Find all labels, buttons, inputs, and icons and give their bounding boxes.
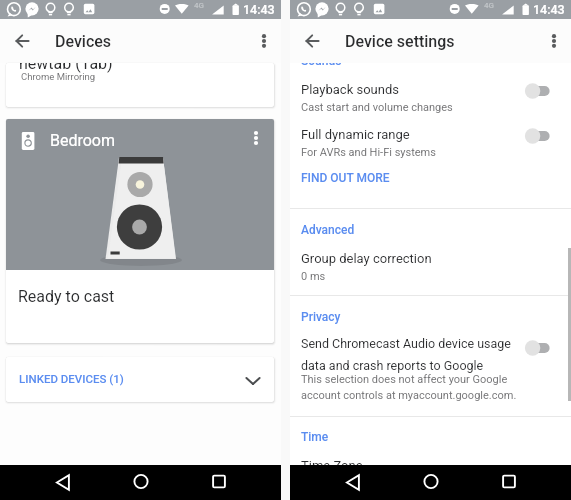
button[interactable]: Back xyxy=(296,25,328,57)
staticText: Device settings xyxy=(345,32,455,51)
staticText: Time xyxy=(301,430,329,444)
staticText: LINKED DEVICES (1) xyxy=(19,372,124,385)
button[interactable]: Group delay correction xyxy=(290,247,571,292)
button[interactable]: Back xyxy=(331,465,375,500)
staticText: Bedroom xyxy=(50,131,116,150)
staticText: Full dynamic range xyxy=(301,127,410,142)
staticText: Time Zone xyxy=(301,458,363,473)
button[interactable]: More options xyxy=(249,26,279,56)
staticText: Privacy xyxy=(301,310,341,324)
staticText: Chrome Mirroring xyxy=(21,71,96,82)
button[interactable]: Playback sounds xyxy=(290,75,571,120)
staticText: Advanced xyxy=(301,223,355,237)
staticText: This selection does not affect your Goog… xyxy=(301,373,508,386)
button[interactable]: FIND OUT MORE xyxy=(290,165,571,197)
staticText: 14:43 xyxy=(243,2,275,17)
button[interactable]: Home xyxy=(409,464,453,499)
staticText: 4G xyxy=(194,1,204,10)
staticText: 14:43 xyxy=(533,2,565,17)
staticText: 4G xyxy=(484,1,494,10)
staticText: Group delay correction xyxy=(301,251,432,266)
button[interactable]: Toggle xyxy=(525,81,559,101)
staticText: For AVRs and Hi-Fi systems xyxy=(301,146,436,159)
button[interactable]: Home xyxy=(119,464,163,499)
button[interactable]: More options xyxy=(539,26,569,56)
button[interactable]: Full dynamic range xyxy=(290,120,571,165)
staticText: Cast start and volume changes xyxy=(301,101,453,114)
button[interactable]: Recent apps xyxy=(197,464,241,499)
button[interactable]: LINKED DEVICES (1) xyxy=(6,357,274,402)
button[interactable]: Ready to cast xyxy=(6,270,274,343)
staticText: Send Chromecast Audio device usage xyxy=(301,336,511,351)
staticText: newtab (Tab) xyxy=(19,63,113,73)
button[interactable]: Toggle xyxy=(525,338,559,358)
button[interactable]: Back xyxy=(41,465,85,500)
staticText: account controls at myaccount.google.com… xyxy=(301,389,517,402)
button[interactable]: Back xyxy=(6,25,38,57)
staticText: FIND OUT MORE xyxy=(301,171,390,185)
staticText: Playback sounds xyxy=(301,82,399,97)
button[interactable]: Recent apps xyxy=(487,464,531,499)
staticText: data and crash reports to Google xyxy=(301,358,484,373)
button[interactable]: Bedroom xyxy=(6,119,274,270)
button[interactable]: Toggle xyxy=(525,126,559,146)
staticText: Ready to cast xyxy=(18,287,115,306)
staticText: Sounds xyxy=(301,54,342,68)
button[interactable]: newtab (Tab) xyxy=(6,63,274,107)
button[interactable]: Send Chromecast Audio device usage xyxy=(290,333,571,408)
button[interactable]: Device options xyxy=(242,124,270,152)
staticText: 0 ms xyxy=(301,270,326,283)
staticText: Devices xyxy=(55,32,112,51)
